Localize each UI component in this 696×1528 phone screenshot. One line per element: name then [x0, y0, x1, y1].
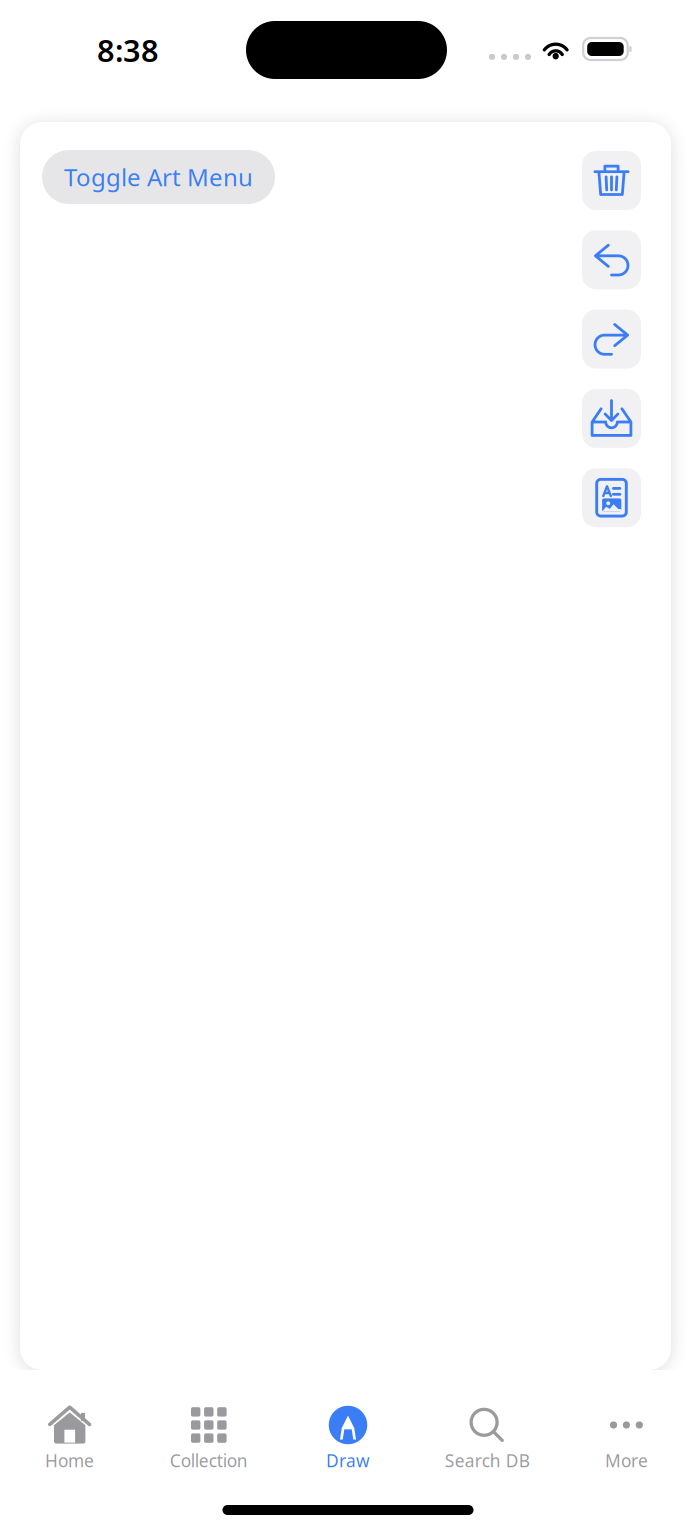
- button[interactable]: Undo: [582, 230, 641, 289]
- button[interactable]: Home: [0, 1370, 139, 1486]
- button[interactable]: Collection: [139, 1370, 278, 1486]
- staticText: Toggle Art Menu: [64, 161, 253, 193]
- button[interactable]: Toggle Art Menu: [42, 150, 275, 204]
- staticText: Home: [45, 1449, 94, 1472]
- button[interactable]: Redo: [582, 310, 641, 369]
- staticText: 8:38: [97, 30, 159, 70]
- button[interactable]: Details: [582, 468, 641, 527]
- staticText: Collection: [170, 1449, 248, 1472]
- button[interactable]: Draw: [278, 1370, 418, 1486]
- button[interactable]: More: [557, 1370, 696, 1486]
- staticText: Search DB: [445, 1449, 530, 1472]
- button[interactable]: Save: [582, 389, 641, 448]
- staticText: Draw: [326, 1449, 370, 1472]
- button[interactable]: Search DB: [418, 1370, 557, 1486]
- button[interactable]: Delete: [582, 151, 641, 210]
- staticText: More: [605, 1449, 648, 1472]
